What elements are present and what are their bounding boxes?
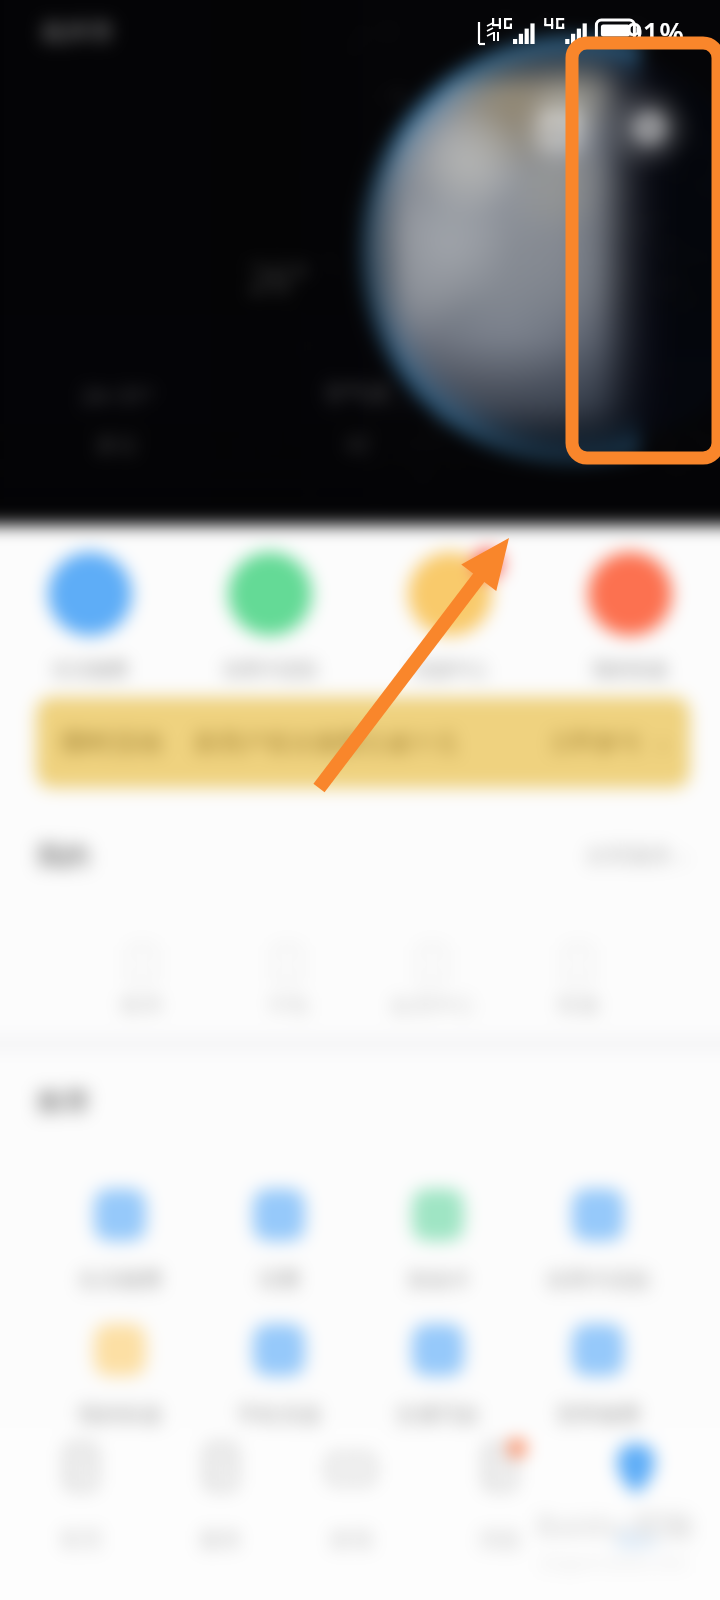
staticText: 91% (626, 13, 684, 52)
button[interactable]: 发现 (285, 1442, 417, 1554)
button[interactable]: 限时活动 (36, 697, 690, 788)
button[interactable]: 消息 (434, 1442, 566, 1554)
button[interactable]: 加油卡 (368, 1189, 508, 1293)
staticText: 加油卡 (407, 1267, 470, 1293)
button[interactable]: 我的 (570, 1442, 702, 1554)
button[interactable]: 会员中心 (370, 944, 494, 1018)
button[interactable]: 我的快递 (50, 1324, 190, 1428)
staticText: 推荐 (36, 1085, 90, 1119)
button[interactable]: 客服 (516, 944, 640, 1018)
staticText: 信用卡还款 (223, 658, 318, 682)
button[interactable]: 信用卡还款 (528, 1189, 668, 1293)
staticText: 话费 (258, 1267, 300, 1293)
staticText: 交通罚款 (396, 1402, 480, 1428)
button[interactable]: 首页 (15, 1442, 147, 1554)
staticText: 全部服务 (585, 842, 673, 870)
button[interactable]: Calendar (524, 92, 596, 164)
staticText: 新用户首次缴费立减十元 (194, 728, 458, 758)
staticText: 服务 (199, 1526, 243, 1554)
staticText: 限时活动 (62, 727, 162, 758)
button[interactable]: 服务 (155, 1442, 287, 1554)
button[interactable]: 宽带缴费 (528, 1324, 668, 1428)
button[interactable]: 充值中心 (370, 552, 530, 682)
staticText: 立即参与 (549, 728, 641, 757)
staticText: 26° (248, 252, 308, 304)
button[interactable]: 我的快递 (550, 552, 710, 682)
button[interactable]: 交通罚款 (368, 1324, 508, 1428)
staticText: 我的快递 (592, 658, 668, 682)
staticText: 空气优 (324, 380, 390, 408)
staticText: 杭州市 (42, 17, 114, 47)
staticText: 生活缴费 (78, 1267, 162, 1293)
button[interactable]: 生活缴费 (50, 1189, 190, 1293)
button[interactable]: Settings (614, 92, 686, 164)
staticText: 信用卡还款 (546, 1267, 651, 1293)
staticText: 我的 (614, 1526, 658, 1554)
staticText: 生活缴费 (52, 658, 128, 682)
button[interactable]: 信用卡还款 (190, 552, 350, 682)
button[interactable]: 话费 (209, 1189, 349, 1293)
button[interactable]: 生活缴费 (10, 552, 170, 682)
button[interactable]: 全部服务 (585, 841, 686, 871)
staticText: Baidu 经验 (536, 1504, 695, 1546)
button[interactable]: 手机充值 (209, 1324, 349, 1428)
button[interactable]: 账单 (80, 944, 204, 1018)
staticText: 充值中心 (412, 658, 488, 682)
staticText: 手机充值 (237, 1402, 321, 1428)
staticText: 我的 (36, 839, 90, 873)
staticText: 宽带缴费 (556, 1402, 640, 1428)
staticText: 我的快递 (78, 1402, 162, 1428)
